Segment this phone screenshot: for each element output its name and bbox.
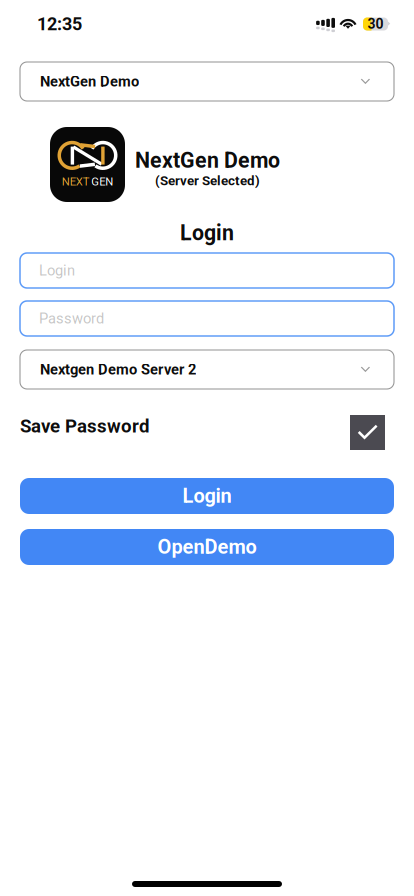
button[interactable]: NextGen Demo	[20, 62, 394, 101]
button[interactable]: Login	[20, 253, 394, 288]
staticText: Nextgen Demo Server 2	[40, 361, 196, 378]
staticText: Password	[39, 310, 104, 327]
button[interactable]: Save Password	[350, 415, 385, 450]
button[interactable]: Password	[20, 301, 394, 336]
staticText: OpenDemo	[157, 535, 256, 559]
button[interactable]: Nextgen Demo Server 2	[20, 350, 394, 389]
staticText: NEXT	[62, 175, 90, 188]
staticText: GEN	[91, 175, 113, 188]
button[interactable]: OpenDemo	[20, 529, 394, 565]
staticText: Login	[39, 262, 75, 279]
staticText: (Server Selected)	[155, 173, 260, 189]
staticText: Save Password	[20, 415, 150, 437]
staticText: NextGen Demo	[40, 73, 139, 90]
staticText: Login	[180, 220, 234, 245]
staticText: NextGen Demo	[135, 148, 280, 173]
staticText: Login	[182, 484, 231, 508]
staticText: 30	[367, 16, 383, 32]
button[interactable]: Login	[20, 478, 394, 514]
staticText: 12:35	[37, 13, 82, 35]
